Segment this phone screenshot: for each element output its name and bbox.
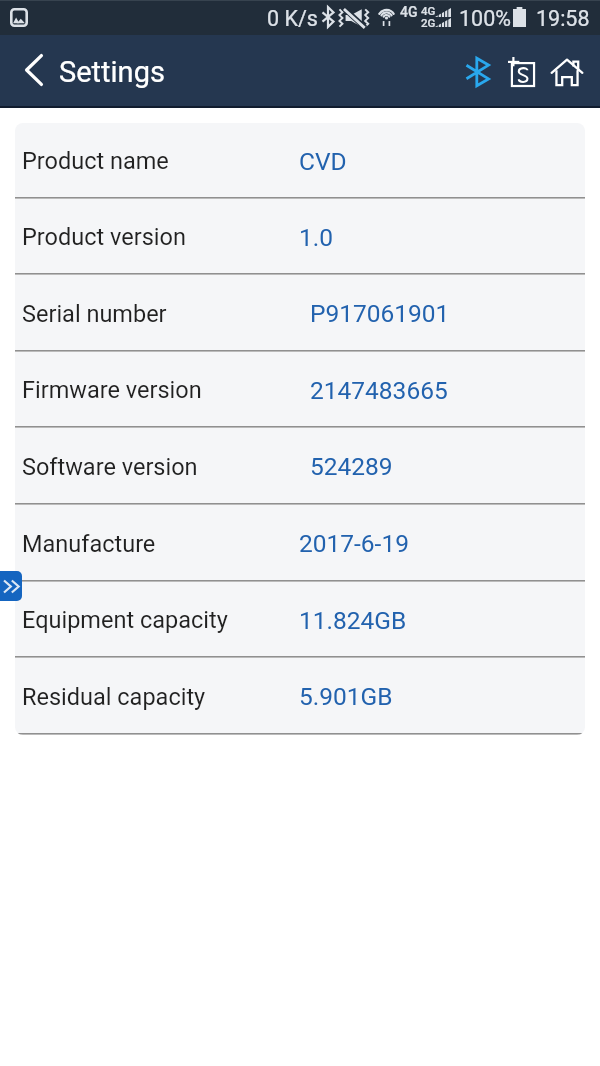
button[interactable]: Screenshot — [499, 35, 544, 108]
button[interactable]: Back — [0, 35, 56, 108]
button[interactable]: Manufacture — [15, 505, 585, 580]
staticText: 4G — [421, 4, 436, 17]
staticText: Product name — [22, 147, 169, 175]
button[interactable]: Expand panel — [0, 571, 22, 601]
staticText: 2G — [421, 16, 436, 29]
staticText: 5.901GB — [299, 682, 393, 711]
staticText: 524289 — [310, 452, 393, 481]
staticText: 0 K/s — [267, 6, 318, 31]
staticText: Serial number — [22, 300, 167, 328]
staticText: Equipment capacity — [22, 606, 228, 634]
button[interactable]: Product version — [15, 199, 585, 273]
button[interactable]: Residual capacity — [15, 658, 585, 733]
staticText: Product version — [22, 223, 186, 251]
button[interactable]: Product name — [15, 123, 585, 197]
button[interactable]: Software version — [15, 428, 585, 503]
staticText: Settings — [59, 55, 165, 89]
staticText: 19:58 — [536, 6, 590, 31]
staticText: Software version — [22, 453, 198, 481]
staticText: Manufacture — [22, 530, 156, 558]
staticText: Residual capacity — [22, 683, 206, 711]
staticText: 1.0 — [299, 223, 333, 252]
button[interactable]: Home — [544, 35, 589, 108]
staticText: 4G — [400, 4, 418, 20]
staticText: 2017-6-19 — [299, 529, 409, 558]
button[interactable]: Serial number — [15, 275, 585, 350]
staticText: 11.824GB — [299, 606, 407, 635]
button[interactable]: Firmware version — [15, 352, 585, 426]
staticText: 2147483665 — [310, 376, 448, 405]
button[interactable]: Bluetooth — [454, 35, 500, 108]
staticText: 100% — [459, 6, 511, 31]
button[interactable]: Equipment capacity — [15, 582, 585, 656]
staticText: Firmware version — [22, 376, 202, 404]
staticText: P917061901 — [310, 299, 450, 328]
staticText: CVD — [299, 147, 347, 176]
